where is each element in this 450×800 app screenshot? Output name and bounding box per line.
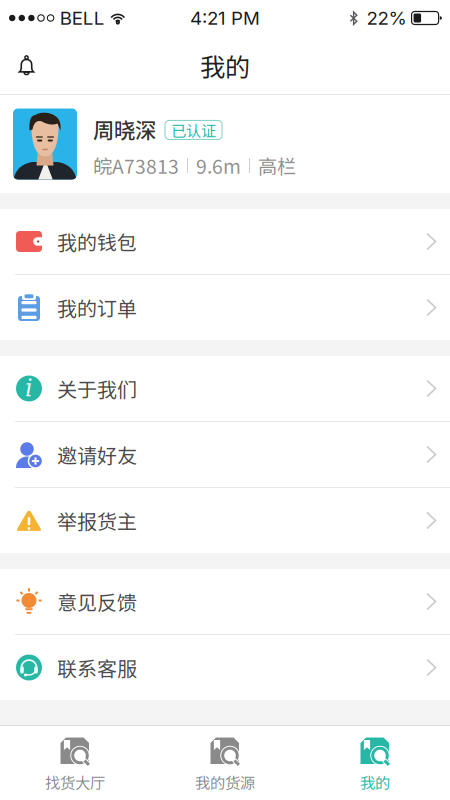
staticText: 邀请好友 — [57, 440, 137, 469]
staticText: 关于我们 — [57, 374, 137, 403]
button[interactable]: 我的钱包 — [0, 209, 450, 275]
staticText: i — [25, 374, 33, 402]
button[interactable]: 举报货主 — [0, 488, 450, 553]
button[interactable]: 意见反馈 — [0, 569, 450, 635]
staticText: 周晓深 — [93, 114, 156, 144]
staticText: 22% — [367, 7, 407, 29]
button[interactable]: 周晓深 — [0, 95, 450, 193]
staticText: 我的订单 — [57, 293, 137, 322]
staticText: 9.6m — [196, 151, 241, 179]
staticText: 我的 — [200, 47, 250, 84]
staticText: 4:21 PM — [190, 7, 260, 29]
button[interactable]: i — [0, 356, 450, 422]
button[interactable]: 联系客服 — [0, 635, 450, 700]
staticText: 找货大厅 — [45, 771, 105, 793]
button[interactable]: 通知 — [0, 42, 52, 89]
staticText: 高栏 — [258, 151, 296, 179]
staticText: 皖A73813 — [93, 151, 179, 179]
staticText: 我的钱包 — [57, 227, 137, 256]
staticText: 我的 — [360, 771, 390, 793]
button[interactable]: 我的货源 — [150, 725, 300, 800]
staticText: 联系客服 — [57, 653, 137, 682]
button[interactable]: 我的 — [300, 725, 450, 800]
button[interactable]: 找货大厅 — [0, 725, 150, 800]
button[interactable]: 邀请好友 — [0, 422, 450, 488]
staticText: 意见反馈 — [57, 587, 137, 616]
staticText: 已认证 — [171, 119, 216, 141]
staticText: 举报货主 — [57, 506, 137, 535]
staticText: 我的货源 — [195, 771, 255, 793]
staticText: BELL — [60, 7, 105, 29]
button[interactable]: 我的订单 — [0, 275, 450, 340]
